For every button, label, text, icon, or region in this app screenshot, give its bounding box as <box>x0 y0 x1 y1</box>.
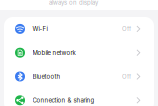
button[interactable]: Mobile network <box>4 41 154 65</box>
staticText: Wi-Fi <box>33 25 48 33</box>
staticText: Mobile network <box>33 49 76 56</box>
staticText: Connection & sharing <box>33 97 95 104</box>
staticText: Off <box>122 73 131 80</box>
staticText: always on display <box>49 0 98 6</box>
staticText: Bluetooth <box>33 73 61 80</box>
button[interactable]: Connection & sharing <box>4 88 154 106</box>
button[interactable]: Wi-Fi <box>4 17 154 41</box>
button[interactable]: Bluetooth <box>4 65 154 88</box>
staticText: Off <box>122 25 131 33</box>
